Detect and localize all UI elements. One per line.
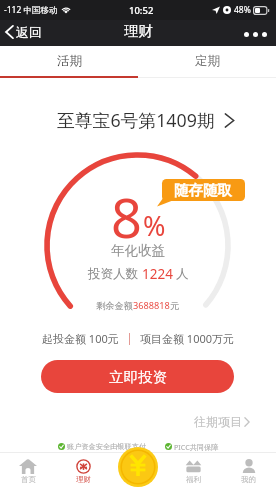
button[interactable]: 福利 [166,453,221,489]
button[interactable]: 理财 [56,453,111,489]
staticText: 起投金额 100元 [42,331,119,346]
staticText: 账户资金安全由银联支付 [67,442,147,451]
button[interactable]: 至尊宝6号第1409期 [53,105,239,135]
button[interactable]: 立即投资 [41,360,234,393]
staticText: PICC共同保障 [174,442,219,452]
staticText: 3688818 [133,299,170,312]
button[interactable]: More options [241,29,270,40]
button[interactable]: 活期 [0,47,138,78]
staticText: 元 [170,300,180,312]
staticText: 年化收益 [111,242,165,259]
staticText: 至尊宝6号第1409期 [57,108,215,132]
staticText: 10:52 [129,4,154,17]
staticText: % [143,207,166,244]
button[interactable]: 首页 [0,453,56,489]
staticText: 福利 [186,475,201,484]
staticText: 活期 [57,53,82,69]
staticText: 首页 [21,475,36,484]
staticText: -112 中国移动 [4,4,58,16]
staticText: 返回 [16,24,42,40]
staticText: 1224 [142,265,173,283]
staticText: 随存随取 [174,181,232,199]
button[interactable]: 往期项目 [190,410,254,433]
staticText: 立即投资 [109,368,167,386]
staticText: 剩余金额 [96,300,133,312]
button[interactable]: 返回 [3,21,44,43]
staticText: 理财 [76,475,91,484]
staticText: 我的 [241,475,256,484]
staticText: 项目金额 1000万元 [140,331,235,346]
staticText: 人 [176,266,189,282]
staticText: 理财 [124,22,153,40]
staticText: 投资人数 [88,266,138,282]
staticText: 8 [111,180,142,254]
staticText: 定期 [195,53,220,69]
button[interactable]: 我的 [221,453,276,489]
button[interactable]: 定期 [138,47,276,78]
staticText: 往期项目 [194,414,242,429]
staticText: 48% [234,4,251,16]
button[interactable]: Invest [118,447,158,487]
